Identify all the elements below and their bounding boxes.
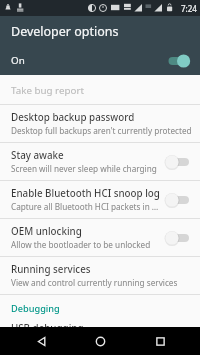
staticText: Enable Bluetooth HCI snoop log <box>11 187 160 200</box>
button[interactable]: Home <box>81 327 119 355</box>
staticText: Developer options <box>11 23 119 40</box>
button[interactable]: Recent apps <box>141 327 179 355</box>
staticText: On <box>11 54 166 67</box>
staticText: USB debugging <box>11 322 84 335</box>
staticText: OEM unlocking <box>11 225 82 238</box>
button[interactable]: Back <box>22 327 60 355</box>
staticText: Debug mode when USB is connected <box>11 336 153 347</box>
staticText: Debugging <box>11 302 60 315</box>
staticText: Capture all Bluetooth HCI packets in a f… <box>11 201 162 212</box>
staticText: Take bug report <box>11 84 85 97</box>
staticText: Desktop backup password <box>11 111 135 124</box>
button[interactable]: Enable Bluetooth HCI snoop log <box>0 181 200 218</box>
button[interactable]: On <box>0 46 200 75</box>
staticText: Screen will never sleep while charging <box>11 163 157 174</box>
button[interactable]: Desktop backup password <box>0 105 200 142</box>
button[interactable]: Take bug report <box>0 78 200 104</box>
button[interactable]: Stay awake <box>0 143 200 180</box>
staticText: 7:24 <box>181 3 197 14</box>
staticText: View and control currently running servi… <box>11 277 178 288</box>
button[interactable]: Running services <box>0 257 200 294</box>
staticText: Allow the bootloader to be unlocked <box>11 239 151 250</box>
button[interactable]: USB debugging <box>0 318 200 353</box>
staticText: Desktop full backups aren't currently pr… <box>11 125 192 136</box>
button[interactable]: OEM unlocking <box>0 219 200 256</box>
staticText: Running services <box>11 263 91 276</box>
staticText: Stay awake <box>11 149 64 162</box>
